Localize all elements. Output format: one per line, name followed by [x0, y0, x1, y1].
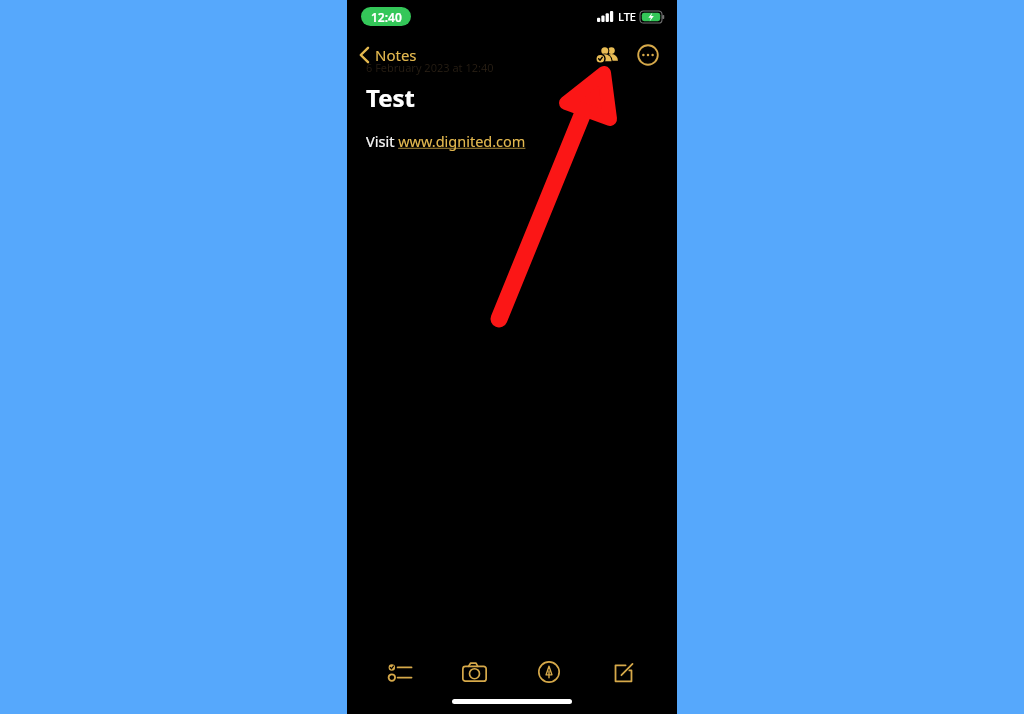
staticText: LTE: [618, 9, 636, 24]
button[interactable]: New note: [586, 652, 661, 692]
staticText: Visit www.dignited.com: [366, 131, 526, 151]
staticText: Test: [366, 81, 415, 114]
button[interactable]: Shared note participants: [592, 40, 622, 70]
button[interactable]: Notes: [355, 42, 421, 68]
button[interactable]: Markup: [511, 652, 586, 692]
button[interactable]: Visit www.dignited.com: [366, 131, 526, 151]
button[interactable]: Checklist: [363, 652, 437, 692]
staticText: 12:40: [371, 9, 402, 25]
button[interactable]: Camera: [437, 652, 511, 692]
staticText: Notes: [375, 45, 417, 65]
staticText: 6 February 2023 at 12:40: [366, 60, 494, 75]
button[interactable]: More options: [633, 40, 663, 70]
